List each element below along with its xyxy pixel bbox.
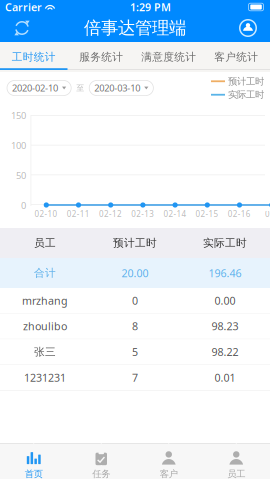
staticText: zhoulibo — [23, 319, 67, 333]
staticText: 员工 — [34, 236, 56, 249]
button[interactable]: 首页 — [0, 444, 67, 479]
staticText: 客户统计 — [214, 50, 258, 63]
staticText: mrzhang — [22, 293, 68, 308]
staticText: 50 — [16, 169, 26, 182]
button[interactable]: 满意度统计 — [135, 44, 202, 70]
staticText: 实际工时 — [203, 236, 247, 249]
staticText: 合计 — [34, 266, 56, 279]
staticText: 工时统计 — [12, 50, 56, 63]
staticText: 98.22 — [211, 345, 238, 359]
staticText: 0.00 — [214, 293, 235, 308]
staticText: 员工 — [227, 468, 245, 479]
button[interactable]: 工时统计 — [0, 44, 67, 70]
staticText: 02-11 — [67, 209, 90, 219]
staticText: 倍事达管理端 — [84, 17, 186, 39]
staticText: 02-15 — [196, 209, 219, 219]
staticText: 任务 — [92, 468, 110, 479]
staticText: 7 — [132, 370, 138, 385]
button[interactable]: Account — [230, 14, 266, 42]
button[interactable]: Refresh — [4, 14, 40, 42]
button[interactable]: 客户 — [135, 444, 202, 479]
staticText: 02- — [265, 209, 270, 219]
button[interactable]: 任务 — [67, 444, 135, 479]
staticText: 至 — [76, 83, 84, 93]
staticText: 2020-03-10 — [94, 82, 140, 94]
button[interactable]: 2020-03-10 — [89, 80, 153, 95]
staticText: 首页 — [25, 468, 43, 479]
staticText: 1:29 PM — [130, 0, 171, 14]
staticText: 客户 — [160, 468, 178, 479]
staticText: 5 — [132, 345, 138, 359]
button[interactable]: 客户统计 — [202, 44, 270, 70]
staticText: 100 — [11, 139, 26, 152]
staticText: 1231231 — [24, 370, 66, 385]
staticText: 服务统计 — [79, 50, 123, 63]
staticText: 预计工时 — [113, 236, 157, 249]
staticText: 02-14 — [163, 209, 186, 219]
staticText: 02-12 — [99, 209, 122, 219]
staticText: 02-13 — [131, 209, 154, 219]
staticText: 196.46 — [208, 266, 241, 280]
staticText: 张三 — [34, 345, 56, 358]
staticText: 02-10 — [35, 209, 58, 219]
staticText: 满意度统计 — [141, 50, 196, 63]
staticText: 0 — [132, 293, 138, 308]
staticText: 0.01 — [214, 370, 235, 385]
staticText: 2020-02-10 — [12, 82, 58, 94]
button[interactable]: 2020-02-10 — [7, 80, 71, 95]
staticText: 预计工时 — [228, 75, 264, 87]
staticText: 98.23 — [211, 319, 238, 333]
staticText: 150 — [11, 109, 26, 122]
staticText: 20.00 — [121, 266, 148, 280]
staticText: 02-16 — [228, 209, 251, 219]
button[interactable]: 服务统计 — [67, 44, 135, 70]
button[interactable]: 员工 — [202, 444, 270, 479]
staticText: 实际工时 — [228, 89, 264, 100]
staticText: 0 — [21, 199, 26, 212]
staticText: 8 — [132, 319, 138, 333]
staticText: Carrier — [5, 0, 42, 14]
